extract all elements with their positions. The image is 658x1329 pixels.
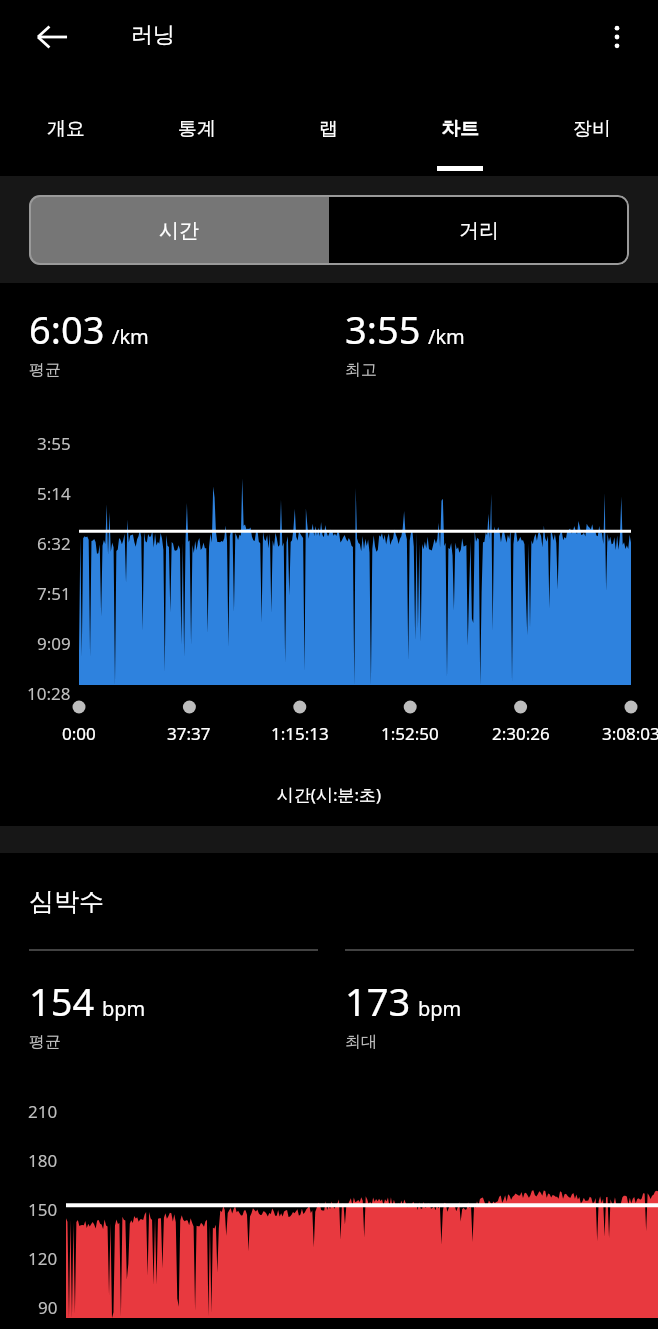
staticText: 랩 — [319, 117, 338, 141]
button[interactable]: 개요 — [0, 90, 131, 174]
staticText: 120 — [28, 1247, 58, 1270]
staticText: 7:51 — [37, 582, 71, 605]
staticText: 0:00 — [62, 722, 96, 745]
staticText: 37:37 — [167, 722, 211, 745]
staticText: 3:55 — [37, 432, 71, 455]
staticText: 평균 — [29, 1032, 61, 1052]
staticText: 개요 — [47, 117, 85, 141]
staticText: 3:08:03 — [602, 722, 658, 745]
staticText: bpm — [102, 995, 146, 1022]
button[interactable]: Back — [24, 9, 80, 65]
button[interactable]: 거리 — [329, 195, 629, 265]
staticText: /km — [112, 323, 149, 350]
staticText: 9:09 — [37, 632, 71, 655]
button[interactable]: 통계 — [131, 90, 262, 174]
staticText: 심박수 — [29, 886, 104, 917]
staticText: 차트 — [441, 117, 479, 141]
staticText: 90 — [38, 1296, 58, 1319]
staticText: 210 — [28, 1100, 58, 1123]
staticText: 거리 — [459, 218, 499, 243]
staticText: /km — [428, 323, 465, 350]
staticText: 시간(시:분:초) — [0, 783, 658, 806]
staticText: 1:52:50 — [381, 722, 439, 745]
staticText: 6:03 — [29, 303, 105, 355]
button[interactable]: 시간 — [29, 195, 329, 265]
staticText: 154 — [29, 975, 95, 1027]
staticText: 180 — [28, 1149, 58, 1172]
staticText: 시간 — [159, 218, 199, 243]
staticText: 장비 — [573, 117, 611, 141]
staticText: 러닝 — [131, 21, 175, 49]
staticText: 평균 — [29, 360, 61, 380]
staticText: 5:14 — [37, 482, 71, 505]
button[interactable]: 차트 — [394, 90, 526, 174]
button[interactable]: More options — [589, 9, 645, 65]
button[interactable]: 랩 — [262, 90, 394, 174]
staticText: 6:32 — [37, 532, 71, 555]
staticText: 173 — [345, 975, 411, 1027]
staticText: 1:15:13 — [271, 722, 329, 745]
staticText: bpm — [418, 995, 462, 1022]
staticText: 3:55 — [345, 303, 421, 355]
staticText: 최대 — [345, 1032, 377, 1052]
staticText: 통계 — [178, 117, 216, 141]
staticText: 150 — [28, 1198, 58, 1221]
staticText: 10:28 — [27, 682, 71, 705]
staticText: 2:30:26 — [492, 722, 550, 745]
button[interactable]: 장비 — [526, 90, 658, 174]
staticText: 최고 — [345, 360, 377, 380]
